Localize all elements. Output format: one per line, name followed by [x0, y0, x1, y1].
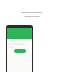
- button[interactable]: [14, 49, 26, 53]
- staticText: Reconcile your employee's attendance rep…: [0, 11, 64, 17]
